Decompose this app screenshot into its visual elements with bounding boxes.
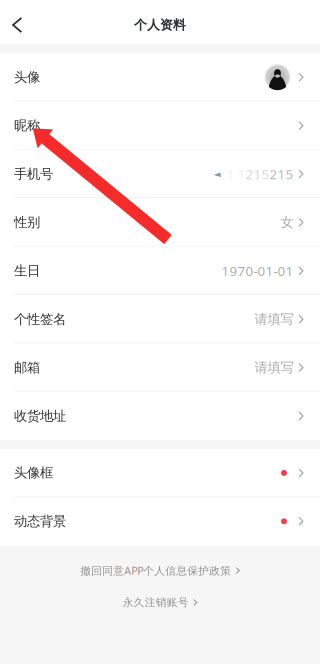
staticText: 1970-01-01 [221,262,293,280]
staticText: 女 [280,214,293,231]
staticText: 邮箱 [14,359,40,376]
staticText: 请填写 [254,311,293,328]
button[interactable]: 永久注销账号 [123,593,197,611]
staticText: 个人资料 [134,17,186,33]
staticText: 性别 [14,214,40,231]
button[interactable]: 撤回同意APP个人信息保护政策 [80,561,240,579]
staticText: 1 1 [220,165,245,183]
staticText: 215 [269,165,293,183]
button[interactable]: 返回 [0,6,36,44]
staticText: 动态背景 [14,513,66,530]
staticText: 永久注销账号 [123,596,189,609]
button[interactable]: 生日 [0,247,320,295]
button[interactable]: 收货地址 [0,392,320,440]
staticText: 请填写 [254,359,293,376]
button[interactable]: 昵称 [0,101,320,150]
staticText: 手机号 [14,166,53,182]
button[interactable]: 头像框 [0,449,320,497]
staticText: 收货地址 [14,408,66,424]
staticText: 215 [245,165,269,183]
staticText: 个性签名 [14,311,66,328]
button[interactable]: 个性签名 [0,295,320,343]
staticText: 头像 [14,69,40,86]
staticText: 撤回同意APP个人信息保护政策 [80,563,231,578]
button[interactable]: 动态背景 [0,497,320,545]
button[interactable]: 手机号 [0,150,320,198]
button[interactable]: 头像 [0,53,320,101]
button[interactable]: 性别 [0,198,320,247]
button[interactable]: 邮箱 [0,343,320,392]
staticText: 生日 [14,262,40,279]
staticText: ◄ [213,169,220,179]
staticText: 昵称 [14,117,40,134]
staticText: 头像框 [14,464,53,481]
